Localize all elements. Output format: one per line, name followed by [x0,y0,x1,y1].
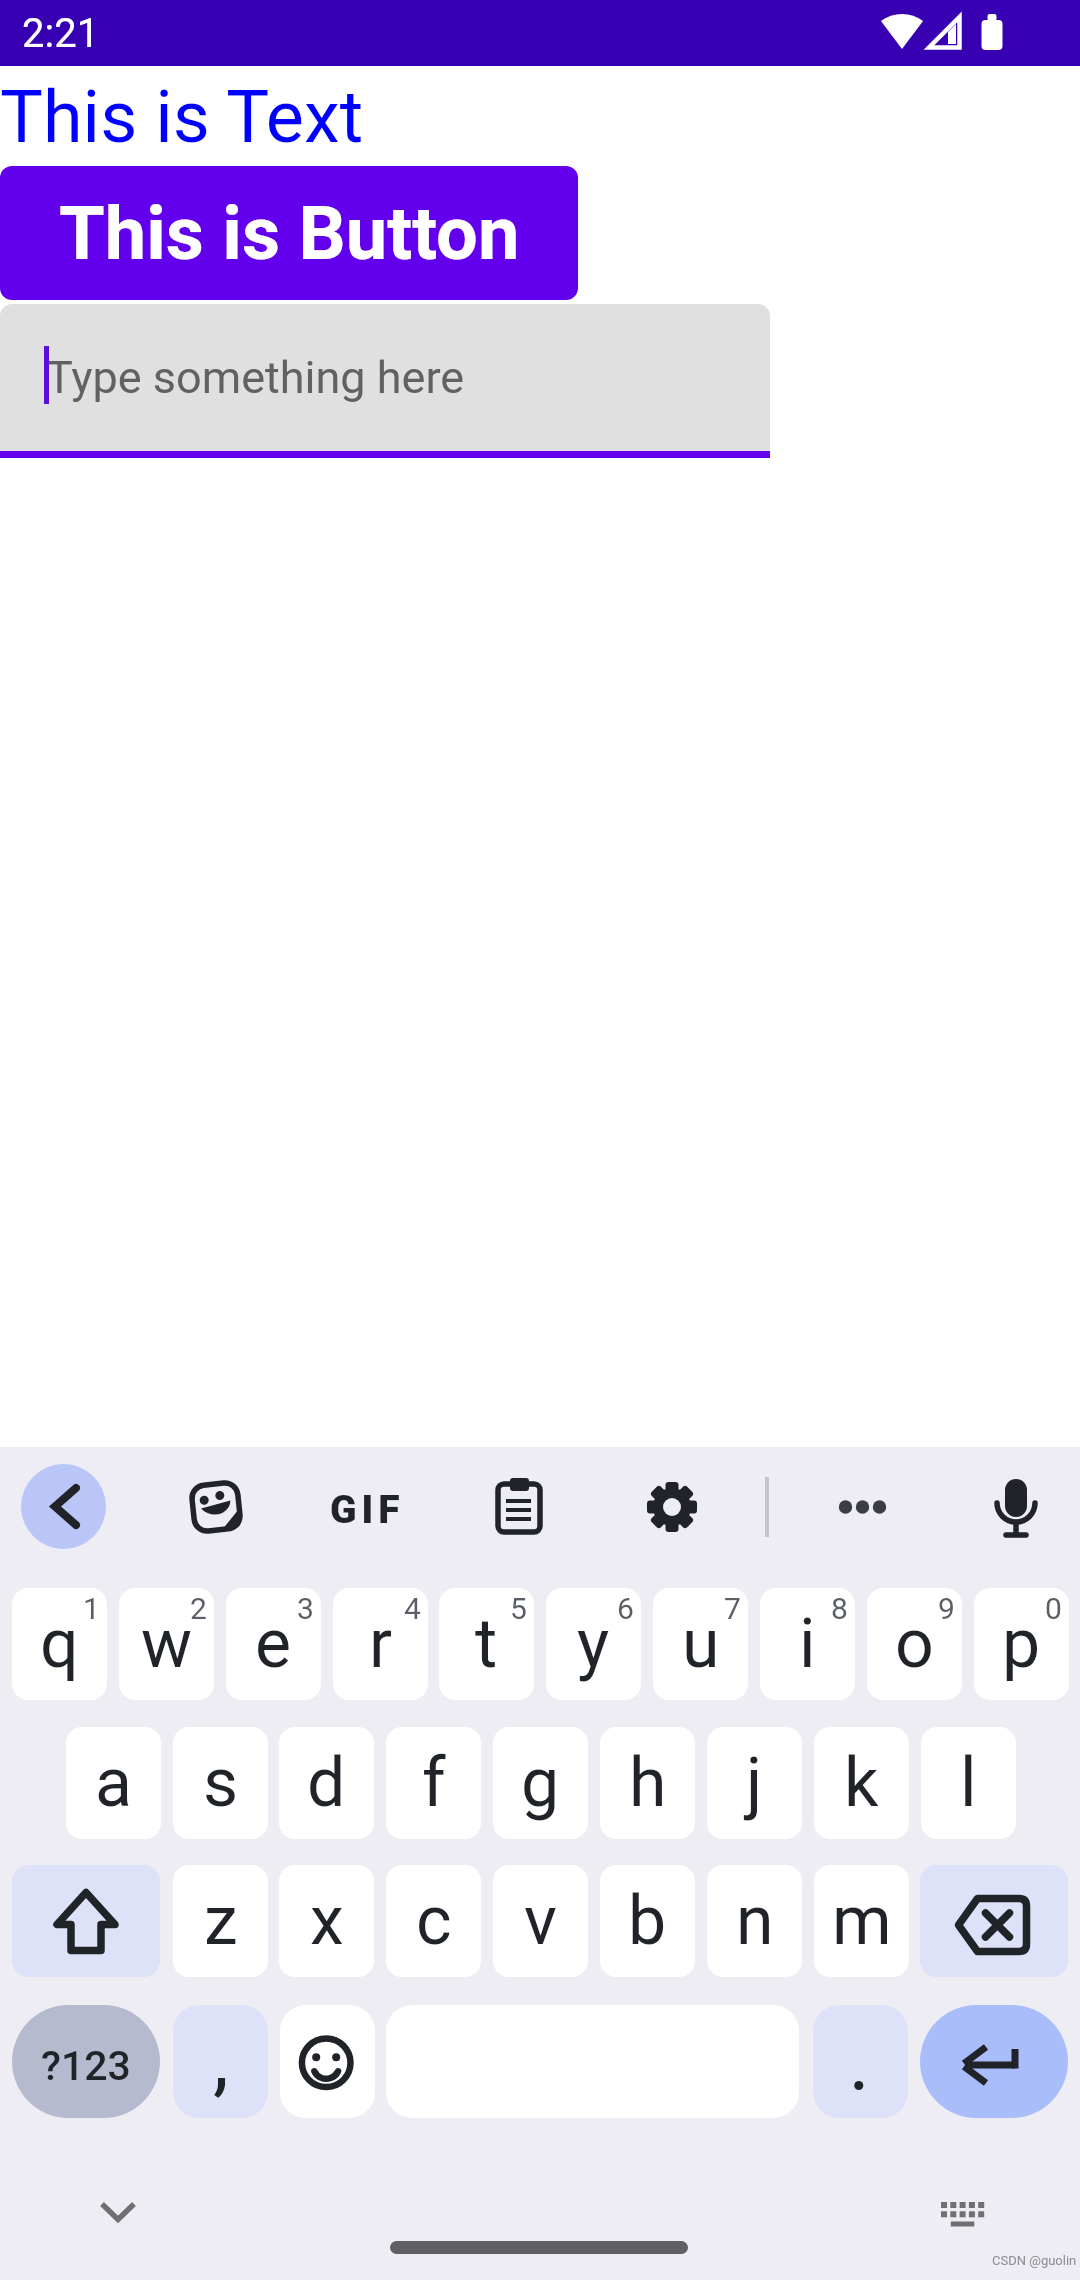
button[interactable] [644,1479,700,1535]
staticText: x [310,1881,344,1961]
button[interactable]: q [12,1588,107,1700]
staticText: m [832,1881,892,1961]
button[interactable]: m [814,1865,909,1977]
staticText: j [746,1743,763,1823]
button[interactable] [813,2005,908,2118]
staticText: c [416,1881,452,1961]
button[interactable]: o [867,1588,962,1700]
button[interactable]: k [814,1727,909,1839]
button[interactable] [12,1865,160,1977]
staticText: v [524,1881,557,1961]
button[interactable]: f [386,1727,481,1839]
staticText: a [95,1743,132,1823]
staticText: 7 [724,1591,741,1626]
staticText: 6 [617,1591,634,1626]
button[interactable]: h [600,1727,695,1839]
staticText: o [895,1604,934,1684]
staticText: This is Button [59,190,520,277]
button[interactable]: r [333,1588,428,1700]
staticText: i [799,1604,816,1684]
button[interactable] [280,2005,375,2118]
staticText: w [141,1604,193,1684]
staticText: Type something here [46,351,465,404]
button[interactable]: d [279,1727,374,1839]
button[interactable]: u [653,1588,748,1700]
staticText: h [629,1743,667,1823]
staticText: 1 [83,1591,100,1626]
button[interactable]: x [279,1865,374,1977]
button[interactable]: a [66,1727,161,1839]
button[interactable] [920,1865,1068,1977]
staticText: 3 [297,1591,314,1626]
button[interactable]: j [707,1727,802,1839]
staticText: 9 [938,1591,955,1626]
staticText: u [682,1604,720,1684]
button[interactable]: l [921,1727,1016,1839]
button[interactable]: i [760,1588,855,1700]
staticText: GIF [330,1487,405,1533]
button[interactable]: This is Button [0,166,578,300]
staticText: k [844,1743,879,1823]
staticText: 5 [510,1591,527,1626]
button[interactable]: c [386,1865,481,1977]
staticText: s [203,1743,239,1823]
staticText: 0 [1045,1591,1062,1626]
staticText: 8 [831,1591,848,1626]
staticText: , [213,2013,229,2107]
staticText: ?123 [41,2042,131,2090]
button[interactable]: b [600,1865,695,1977]
staticText: This is Text [0,75,364,159]
button[interactable]: z [173,1865,268,1977]
staticText: 4 [404,1591,421,1626]
staticText: z [204,1881,238,1961]
button[interactable]: y [546,1588,641,1700]
button[interactable]: Type something here [0,304,770,451]
button[interactable] [830,1480,894,1534]
staticText: y [577,1604,610,1684]
staticText: l [960,1743,977,1823]
button[interactable]: s [173,1727,268,1839]
staticText: 2 [190,1591,207,1626]
button[interactable]: e [226,1588,321,1700]
staticText: e [255,1604,292,1684]
button[interactable]: n [707,1865,802,1977]
staticText: p [1002,1604,1041,1684]
button[interactable]: p [974,1588,1069,1700]
button[interactable] [21,1464,106,1549]
button[interactable] [188,1479,244,1535]
button[interactable]: , [173,2005,268,2118]
button[interactable]: g [493,1727,588,1839]
button[interactable] [88,2190,148,2236]
button[interactable]: v [493,1865,588,1977]
staticText: 2:21 [22,10,100,57]
staticText: n [736,1881,774,1961]
staticText: b [628,1881,667,1961]
staticText: r [369,1604,393,1684]
button[interactable] [934,2194,990,2234]
staticText: t [475,1604,498,1684]
staticText: f [422,1743,446,1823]
button[interactable] [920,2005,1068,2118]
button[interactable]: w [119,1588,214,1700]
button[interactable] [492,1477,546,1537]
button[interactable] [988,1477,1044,1539]
staticText: q [40,1604,79,1684]
button[interactable]: GIF [327,1483,407,1537]
button[interactable]: ?123 [12,2005,160,2118]
staticText: CSDN @guolin [992,2253,1077,2268]
button[interactable]: t [439,1588,534,1700]
staticText: d [307,1743,346,1823]
staticText: g [521,1743,560,1823]
